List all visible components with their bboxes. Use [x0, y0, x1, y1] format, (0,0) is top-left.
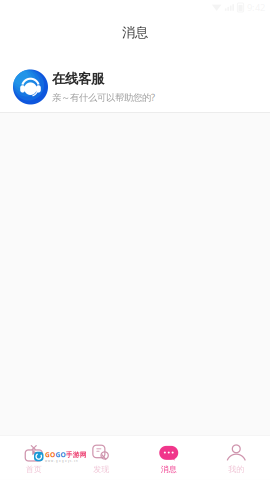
staticText: 首页 — [26, 464, 42, 474]
button[interactable]: 消息 — [135, 435, 202, 480]
staticText: 消息 — [161, 464, 177, 474]
button[interactable]: 首页 — [0, 435, 67, 480]
staticText: 消息 — [122, 24, 148, 41]
staticText: GO — [45, 450, 55, 459]
staticText: 我的 — [228, 464, 244, 474]
staticText: 在线客服 — [52, 71, 104, 87]
button[interactable]: 我的 — [202, 435, 270, 480]
staticText: w w w . g o g o y s . c n — [45, 459, 78, 463]
staticText: 手游网 — [66, 451, 87, 459]
button[interactable]: 发现 — [67, 435, 135, 480]
staticText: GO — [55, 450, 65, 459]
button[interactable]: 在线客服 — [0, 56, 270, 112]
staticText: 发现 — [93, 464, 109, 474]
staticText: 亲～有什么可以帮助您的? — [52, 91, 155, 103]
